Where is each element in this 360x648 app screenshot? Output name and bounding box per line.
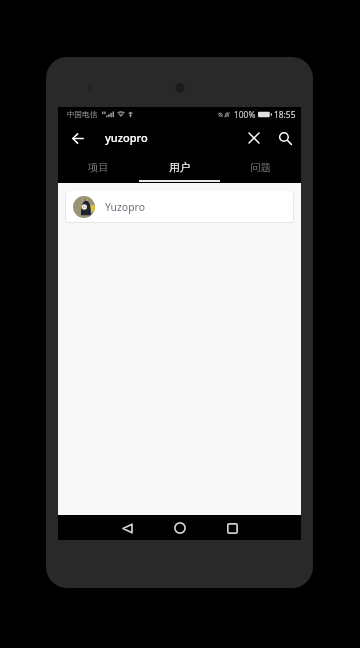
button[interactable]: 用户 — [139, 154, 220, 183]
staticText: Yuzopro — [105, 200, 145, 214]
staticText: 问题 — [250, 161, 271, 174]
button[interactable]: Back — [115, 516, 139, 540]
button[interactable]: Navigate up — [66, 126, 90, 150]
staticText: yuzopro — [105, 130, 148, 145]
staticText: 用户 — [169, 161, 190, 174]
button[interactable]: Recent apps — [220, 516, 244, 540]
staticText: 项目 — [88, 161, 109, 174]
button[interactable]: Clear — [242, 126, 266, 150]
button[interactable]: 问题 — [220, 154, 301, 183]
staticText: 100% — [234, 109, 256, 120]
button[interactable]: Yuzopro — [66, 191, 293, 222]
button[interactable]: Home — [168, 516, 192, 540]
staticText: 18:55 — [274, 109, 296, 120]
staticText: 中国电信 — [67, 110, 98, 120]
button[interactable]: Search — [273, 126, 297, 150]
button[interactable]: 项目 — [58, 154, 139, 183]
